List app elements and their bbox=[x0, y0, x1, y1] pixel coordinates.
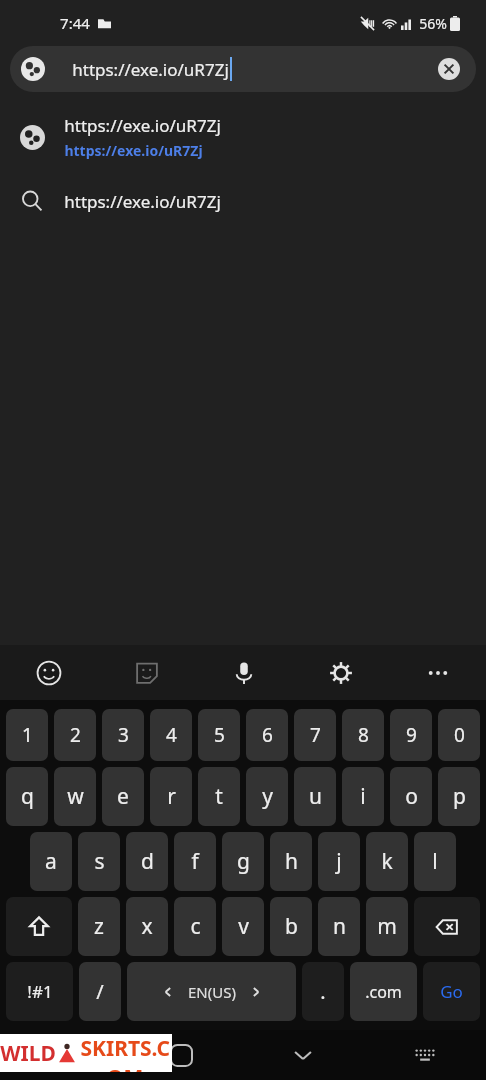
button[interactable]: u bbox=[294, 767, 336, 826]
button[interactable]: Go bbox=[423, 962, 480, 1021]
staticText: 0 bbox=[454, 722, 465, 748]
button[interactable]: 6 bbox=[246, 709, 288, 761]
button[interactable]: Stickers bbox=[98, 645, 195, 700]
button[interactable]: z bbox=[78, 897, 120, 956]
staticText: SKIRTS.COM bbox=[78, 1034, 172, 1072]
button[interactable]: 1 bbox=[6, 709, 48, 761]
button[interactable]: a bbox=[30, 832, 72, 891]
staticText: h bbox=[285, 847, 298, 876]
staticText: 2 bbox=[70, 722, 81, 748]
staticText: p bbox=[453, 782, 466, 811]
button[interactable]: Settings bbox=[292, 645, 389, 700]
button[interactable]: Switch keyboard bbox=[364, 1030, 486, 1080]
staticText: b bbox=[285, 912, 298, 941]
button[interactable]: n bbox=[318, 897, 360, 956]
staticText: w bbox=[67, 782, 84, 811]
staticText: g bbox=[237, 847, 250, 876]
button[interactable]: y bbox=[246, 767, 288, 826]
staticText: t bbox=[215, 782, 223, 811]
button[interactable]: o bbox=[390, 767, 432, 826]
staticText: !#1 bbox=[27, 980, 53, 1003]
button[interactable]: r bbox=[150, 767, 192, 826]
button[interactable]: Shift bbox=[6, 897, 72, 956]
staticText: n bbox=[333, 912, 346, 941]
button[interactable]: e bbox=[102, 767, 144, 826]
staticText: Go bbox=[440, 980, 463, 1003]
staticText: e bbox=[117, 782, 129, 811]
button[interactable]: h bbox=[270, 832, 312, 891]
button[interactable]: t bbox=[198, 767, 240, 826]
button[interactable]: 5 bbox=[198, 709, 240, 761]
staticText: k bbox=[381, 847, 393, 876]
button[interactable]: 8 bbox=[342, 709, 384, 761]
staticText: WILD bbox=[0, 1039, 56, 1068]
staticText: q bbox=[21, 782, 34, 811]
staticText: 6 bbox=[262, 722, 273, 748]
staticText: 4 bbox=[166, 722, 177, 748]
staticText: 56% bbox=[419, 14, 447, 33]
staticText: https://exe.io/uR7Zj bbox=[64, 114, 221, 137]
button[interactable]: p bbox=[438, 767, 480, 826]
button[interactable]: 4 bbox=[150, 709, 192, 761]
button[interactable]: j bbox=[318, 832, 360, 891]
staticText: s bbox=[94, 847, 105, 876]
button[interactable]: 2 bbox=[54, 709, 96, 761]
button[interactable]: v bbox=[222, 897, 264, 956]
staticText: j bbox=[336, 847, 342, 876]
button[interactable]: Space, EN(US) bbox=[127, 962, 296, 1021]
staticText: 1 bbox=[22, 722, 33, 748]
button[interactable]: / bbox=[79, 962, 121, 1021]
button[interactable]: 3 bbox=[102, 709, 144, 761]
staticText: m bbox=[377, 912, 397, 941]
staticText: o bbox=[405, 782, 418, 811]
staticText: r bbox=[167, 782, 176, 811]
button[interactable]: s bbox=[78, 832, 120, 891]
button[interactable]: b bbox=[270, 897, 312, 956]
staticText: f bbox=[191, 847, 199, 876]
staticText: x bbox=[141, 912, 153, 941]
staticText: u bbox=[309, 782, 322, 811]
button[interactable]: https://exe.io/uR7Zj bbox=[0, 102, 486, 172]
button[interactable]: q bbox=[6, 767, 48, 826]
button[interactable]: Backspace bbox=[414, 897, 480, 956]
button[interactable]: Clear bbox=[438, 58, 460, 80]
staticText: i bbox=[360, 782, 366, 811]
staticText: https://exe.io/uR7Zj bbox=[64, 190, 221, 213]
button[interactable]: Home bbox=[121, 1030, 242, 1080]
button[interactable]: i bbox=[342, 767, 384, 826]
button[interactable]: w bbox=[54, 767, 96, 826]
button[interactable]: k bbox=[366, 832, 408, 891]
button[interactable]: x bbox=[126, 897, 168, 956]
button[interactable]: g bbox=[222, 832, 264, 891]
button[interactable]: https://exe.io/uR7Zj bbox=[10, 46, 476, 92]
button[interactable]: d bbox=[126, 832, 168, 891]
button[interactable]: 7 bbox=[294, 709, 336, 761]
button[interactable]: f bbox=[174, 832, 216, 891]
staticText: 8 bbox=[358, 722, 369, 748]
button[interactable]: Voice input bbox=[195, 645, 292, 700]
staticText: EN(US) bbox=[188, 982, 236, 1002]
button[interactable]: Hide keyboard bbox=[242, 1030, 364, 1080]
staticText: https://exe.io/uR7Zj bbox=[64, 141, 203, 160]
button[interactable]: https://exe.io/uR7Zj bbox=[0, 172, 486, 230]
staticText: 3 bbox=[118, 722, 129, 748]
staticText: v bbox=[238, 912, 249, 941]
button[interactable]: More options bbox=[389, 645, 486, 700]
button[interactable]: 9 bbox=[390, 709, 432, 761]
staticText: 9 bbox=[406, 722, 417, 748]
staticText: l bbox=[432, 847, 438, 876]
button[interactable]: c bbox=[174, 897, 216, 956]
button[interactable]: Emoji bbox=[0, 645, 98, 700]
button[interactable]: .com bbox=[350, 962, 417, 1021]
staticText: c bbox=[190, 912, 201, 941]
staticText: / bbox=[96, 978, 104, 1005]
button[interactable]: . bbox=[302, 962, 344, 1021]
button[interactable]: l bbox=[414, 832, 456, 891]
staticText: 7:44 bbox=[60, 13, 90, 33]
staticText: a bbox=[45, 847, 57, 876]
button[interactable]: m bbox=[366, 897, 408, 956]
button[interactable]: !#1 bbox=[6, 962, 73, 1021]
staticText: .com bbox=[365, 981, 402, 1003]
button[interactable]: 0 bbox=[438, 709, 480, 761]
staticText: 5 bbox=[214, 722, 225, 748]
